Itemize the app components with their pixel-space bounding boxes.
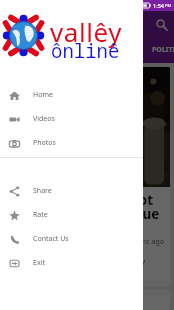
- button[interactable]: Exit: [0, 251, 143, 275]
- staticText: Exit: [33, 258, 45, 268]
- staticText: 2 hr. ago: [136, 237, 165, 247]
- staticText: PM: [165, 3, 172, 8]
- staticText: Videos: [33, 114, 55, 124]
- button[interactable]: Videos: [0, 107, 143, 131]
- button[interactable]: Photos: [0, 131, 143, 155]
- button[interactable]: Share: [0, 179, 143, 203]
- staticText: Rate: [33, 210, 48, 220]
- staticText: 3 militants were shot inside the big mos…: [11, 191, 160, 223]
- staticText: ônlinê: [51, 38, 120, 64]
- button[interactable]: TOP STORIES: [78, 43, 142, 57]
- button[interactable]: Contact Us: [0, 227, 143, 251]
- button[interactable]: Rate: [0, 203, 143, 227]
- staticText: 1:54: [153, 2, 164, 9]
- staticText: Contact Us: [33, 234, 69, 244]
- button[interactable]: Search: [153, 16, 171, 34]
- staticText: vallêy: [50, 14, 123, 49]
- staticText: TOP STORIES: [88, 45, 132, 55]
- staticText: Photos: [33, 138, 56, 148]
- staticText: Share: [33, 186, 52, 196]
- staticText: Politics: [11, 237, 35, 247]
- staticText: Home: [33, 90, 53, 100]
- button[interactable]: POLITICS: [142, 43, 174, 57]
- button[interactable]: Home: [0, 83, 143, 107]
- staticText: POLITICS: [152, 45, 174, 55]
- staticText: Two militants were shot inside the city …: [11, 256, 146, 286]
